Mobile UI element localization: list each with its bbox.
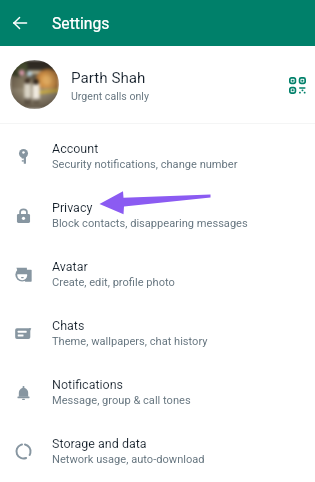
button[interactable]: My QR code — [281, 69, 313, 101]
staticText: Privacy — [52, 200, 93, 215]
button[interactable]: Chats — [0, 301, 315, 360]
button[interactable]: Back — [2, 5, 38, 41]
staticText: Settings — [52, 14, 110, 32]
button[interactable]: Notifications — [0, 360, 315, 419]
staticText: Block contacts, disappearing messages — [52, 217, 248, 230]
button[interactable]: Storage and data — [0, 419, 315, 478]
staticText: Network usage, auto-download — [52, 453, 205, 466]
staticText: Urgent calls only — [71, 90, 149, 102]
staticText: Avatar — [52, 259, 88, 274]
staticText: Create, edit, profile photo — [52, 276, 175, 289]
staticText: Theme, wallpapers, chat history — [52, 335, 208, 348]
button[interactable]: Avatar — [0, 242, 315, 301]
staticText: Storage and data — [52, 436, 147, 451]
staticText: Parth Shah — [71, 69, 146, 87]
staticText: Account — [52, 141, 99, 156]
staticText: Chats — [52, 318, 85, 333]
button[interactable]: Account — [0, 124, 315, 183]
staticText: Message, group & call tones — [52, 394, 191, 407]
button[interactable]: Parth Shah — [0, 46, 315, 123]
staticText: Security notifications, change number — [52, 158, 238, 171]
staticText: Notifications — [52, 377, 124, 392]
button[interactable]: Privacy — [0, 183, 315, 242]
